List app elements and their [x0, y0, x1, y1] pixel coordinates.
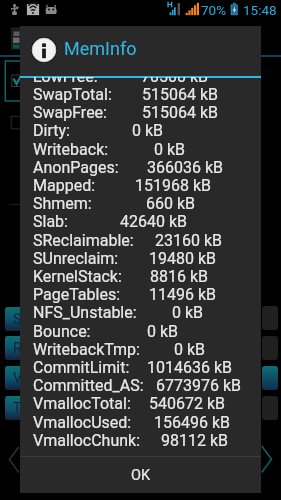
- staticText: CommitLimit:: [33, 358, 130, 377]
- staticText: 0 kB: [172, 303, 204, 322]
- staticText: PageTables:: [33, 285, 121, 304]
- staticText: Bounce:: [33, 322, 91, 341]
- staticText: T: [13, 400, 22, 416]
- staticText: 70%: [201, 2, 227, 18]
- staticText: Slab:: [33, 212, 68, 231]
- staticText: S: [13, 311, 22, 327]
- staticText: Committed_AS:: [33, 376, 144, 395]
- staticText: 515064 kB: [142, 85, 218, 104]
- staticText: VmallocTotal:: [33, 394, 131, 413]
- staticText: 23160 kB: [155, 231, 223, 250]
- staticText: Shmem:: [33, 194, 92, 213]
- staticText: 11496 kB: [149, 285, 217, 304]
- staticText: SReclaimable:: [33, 231, 134, 250]
- staticText: 0 kB: [132, 121, 164, 140]
- staticText: WritebackTmp:: [33, 340, 140, 359]
- staticText: Dirty:: [33, 121, 70, 140]
- staticText: 515064 kB: [142, 103, 218, 122]
- staticText: 70500 kB: [141, 77, 209, 86]
- staticText: 660 kB: [146, 194, 196, 213]
- staticText: 156496 kB: [154, 413, 230, 432]
- staticText: 151968 kB: [135, 176, 211, 195]
- staticText: SwapTotal:: [33, 85, 112, 104]
- staticText: 0 kB: [174, 340, 206, 359]
- staticText: 42640 kB: [120, 212, 188, 231]
- staticText: SwapFree:: [33, 103, 107, 122]
- staticText: R: [13, 340, 22, 356]
- staticText: 19480 kB: [149, 249, 217, 268]
- staticText: 8816 kB: [150, 267, 209, 286]
- staticText: 15:48: [243, 2, 277, 18]
- staticText: KernelStack:: [33, 267, 122, 286]
- staticText: Writeback:: [33, 140, 109, 159]
- button[interactable]: OK: [20, 457, 261, 493]
- staticText: H: [167, 0, 173, 9]
- staticText: 98112 kB: [161, 431, 229, 450]
- staticText: SUnreclaim:: [33, 249, 119, 268]
- staticText: 0 kB: [147, 322, 179, 341]
- staticText: AnonPages:: [33, 158, 119, 177]
- staticText: 0 kB: [154, 140, 186, 159]
- staticText: LowFree:: [33, 77, 98, 86]
- staticText: 540672 kB: [149, 394, 225, 413]
- staticText: OK: [131, 467, 151, 484]
- staticText: Mapped:: [33, 176, 96, 195]
- staticText: VmallocChunk:: [33, 431, 141, 450]
- staticText: 1014636 kB: [147, 358, 232, 377]
- staticText: V: [13, 370, 22, 386]
- staticText: 6773976 kB: [156, 376, 241, 395]
- staticText: 366036 kB: [147, 158, 223, 177]
- staticText: MemInfo: [64, 38, 137, 59]
- staticText: VmallocUsed:: [33, 413, 132, 432]
- staticText: NFS_Unstable:: [33, 303, 137, 322]
